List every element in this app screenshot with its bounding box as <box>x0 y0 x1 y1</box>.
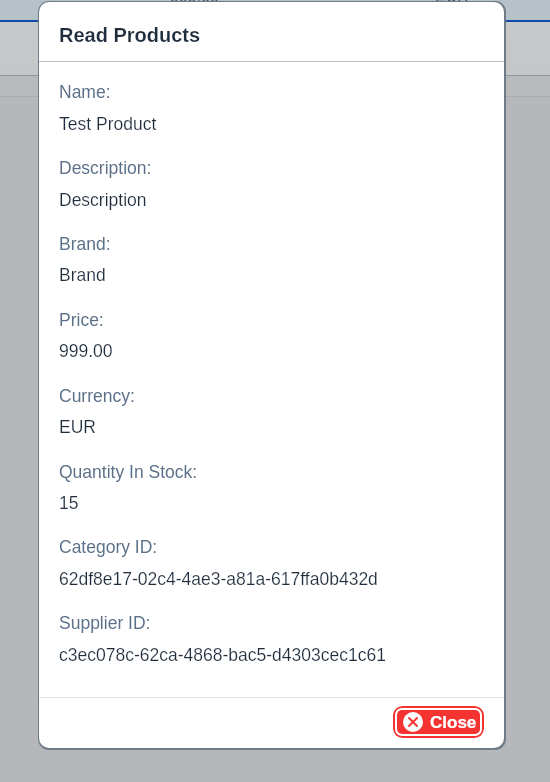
staticText: Category ID: <box>59 537 158 557</box>
staticText: Brand <box>59 265 106 285</box>
staticText: 15 <box>59 493 79 513</box>
staticText: Description <box>59 190 147 210</box>
staticText: 999.00 <box>59 341 113 361</box>
staticText: Description: <box>59 158 152 178</box>
staticText: EUR <box>435 0 469 6</box>
staticText: Name: <box>59 82 111 102</box>
other: Close <box>403 712 423 732</box>
staticText: c3ec078c-62ca-4868-bac5-d4303cec1c61 <box>59 645 386 665</box>
staticText: EUR <box>59 417 96 437</box>
staticText: Quantity In Stock: <box>59 462 198 482</box>
staticText: 999.00 <box>170 0 219 6</box>
staticText: Price: <box>59 310 104 330</box>
staticText: Read Products <box>59 24 201 46</box>
staticText: Test Product <box>59 114 157 134</box>
staticText: Close <box>430 713 477 732</box>
staticText: Supplier ID: <box>59 613 151 633</box>
button[interactable]: Close <box>397 710 480 734</box>
staticText: Brand: <box>59 234 111 254</box>
staticText: 62df8e17-02c4-4ae3-a81a-617ffa0b432d <box>59 569 378 589</box>
staticText: Currency: <box>59 386 135 406</box>
